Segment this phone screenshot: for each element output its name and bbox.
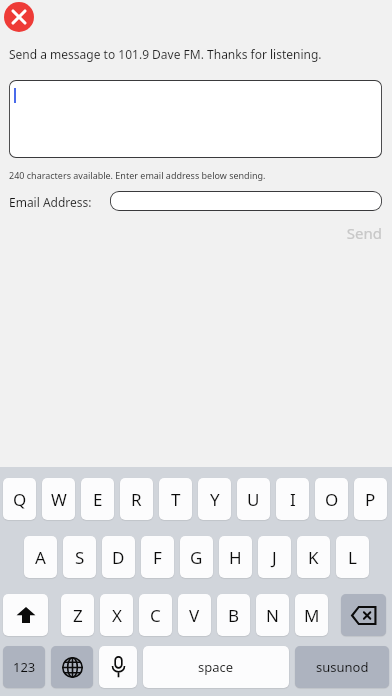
button[interactable] bbox=[9, 80, 382, 158]
staticText: Y bbox=[210, 488, 220, 511]
staticText: Z bbox=[73, 604, 83, 627]
button[interactable]: Close bbox=[4, 2, 34, 32]
staticText: X bbox=[112, 604, 122, 627]
button[interactable]: Q bbox=[3, 478, 36, 520]
button[interactable]: G bbox=[180, 536, 213, 578]
button[interactable]: K bbox=[297, 536, 330, 578]
staticText: M bbox=[304, 604, 320, 627]
button[interactable]: T bbox=[159, 478, 192, 520]
staticText: susunod bbox=[316, 658, 369, 676]
staticText: R bbox=[131, 488, 142, 511]
button[interactable]: P bbox=[354, 478, 387, 520]
staticText: Email Address: bbox=[9, 194, 92, 210]
button[interactable]: N bbox=[256, 594, 289, 636]
button[interactable]: S bbox=[63, 536, 96, 578]
staticText: Send bbox=[346, 223, 382, 243]
staticText: H bbox=[229, 546, 242, 569]
staticText: D bbox=[112, 546, 125, 569]
staticText: K bbox=[308, 546, 319, 569]
button[interactable]: X bbox=[100, 594, 133, 636]
button[interactable]: M bbox=[295, 594, 328, 636]
staticText: P bbox=[365, 488, 376, 511]
button[interactable]: 123 bbox=[3, 646, 45, 688]
staticText: E bbox=[93, 488, 103, 511]
button[interactable]: H bbox=[219, 536, 252, 578]
staticText: G bbox=[190, 546, 203, 569]
staticText: C bbox=[150, 604, 161, 627]
staticText: 123 bbox=[13, 658, 36, 676]
button[interactable]: J bbox=[258, 536, 291, 578]
button[interactable]: Backspace bbox=[341, 594, 386, 636]
button[interactable]: W bbox=[42, 478, 75, 520]
button[interactable]: D bbox=[102, 536, 135, 578]
button[interactable]: I bbox=[276, 478, 309, 520]
staticText: 240 characters available. Enter email ad… bbox=[9, 169, 266, 181]
button[interactable]: Change keyboard bbox=[51, 646, 93, 688]
staticText: T bbox=[171, 488, 181, 511]
button[interactable]: Z bbox=[61, 594, 94, 636]
button[interactable]: L bbox=[336, 536, 369, 578]
button[interactable]: Shift bbox=[3, 594, 48, 636]
button[interactable]: E bbox=[81, 478, 114, 520]
staticText: W bbox=[51, 488, 67, 511]
staticText: B bbox=[228, 604, 240, 627]
staticText: U bbox=[247, 488, 260, 511]
button[interactable]: susunod bbox=[295, 646, 389, 688]
staticText: space bbox=[198, 658, 234, 676]
staticText: I bbox=[290, 488, 296, 511]
button[interactable]: Send bbox=[312, 221, 382, 245]
button[interactable]: space bbox=[143, 646, 289, 688]
button[interactable]: V bbox=[178, 594, 211, 636]
button[interactable]: U bbox=[237, 478, 270, 520]
staticText: V bbox=[189, 604, 200, 627]
staticText: F bbox=[153, 546, 162, 569]
staticText: O bbox=[325, 488, 339, 511]
staticText: Send a message to 101.9 Dave FM. Thanks … bbox=[9, 46, 322, 62]
button[interactable]: Dictate bbox=[99, 646, 137, 688]
button[interactable]: C bbox=[139, 594, 172, 636]
button[interactable]: Y bbox=[198, 478, 231, 520]
staticText: A bbox=[35, 546, 46, 569]
staticText: J bbox=[272, 546, 277, 569]
button[interactable]: B bbox=[217, 594, 250, 636]
button[interactable] bbox=[110, 191, 382, 211]
button[interactable]: O bbox=[315, 478, 348, 520]
button[interactable]: A bbox=[24, 536, 57, 578]
staticText: Q bbox=[13, 488, 27, 511]
button[interactable]: R bbox=[120, 478, 153, 520]
staticText: N bbox=[266, 604, 279, 627]
staticText: L bbox=[348, 546, 357, 569]
staticText: S bbox=[75, 546, 85, 569]
button[interactable]: F bbox=[141, 536, 174, 578]
